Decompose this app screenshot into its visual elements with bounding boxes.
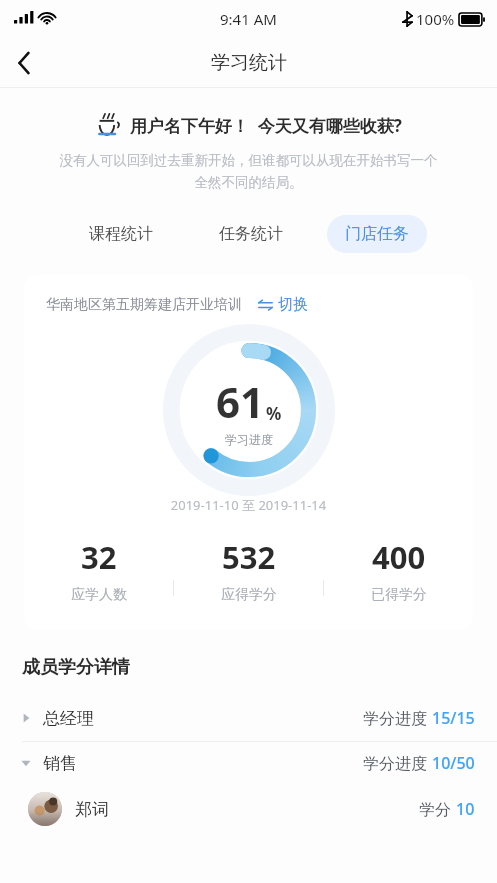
staticText: 没有人可以回到过去重新开始，但谁都可以从现在开始书写一个全然不同的结局。 xyxy=(58,152,439,191)
button[interactable]: Back xyxy=(0,39,48,87)
staticText: 10/50 xyxy=(432,752,475,774)
staticText: 华南地区第五期筹建店开业培训 xyxy=(46,296,242,314)
button[interactable]: 课程统计 xyxy=(71,215,171,253)
staticText: 成员学分详情 xyxy=(22,656,130,679)
staticText: 应学人数 xyxy=(71,586,127,604)
staticText: 61 xyxy=(216,373,265,430)
staticText: 总经理 xyxy=(43,708,94,729)
staticText: 用户名下午好！ 今天又有哪些收获? xyxy=(130,114,402,137)
staticText: 400 xyxy=(372,536,426,578)
staticText: 郑词 xyxy=(75,799,109,820)
button[interactable]: 总经理 xyxy=(0,697,497,741)
staticText: 任务统计 xyxy=(219,224,283,244)
staticText: 课程统计 xyxy=(89,224,153,244)
button[interactable]: 切换 xyxy=(256,291,310,318)
button[interactable]: 门店任务 xyxy=(327,215,427,253)
staticText: 切换 xyxy=(278,295,308,314)
staticText: 学习进度 xyxy=(225,432,273,447)
staticText: 学分进度 xyxy=(363,752,432,774)
staticText: 532 xyxy=(222,536,276,578)
staticText: 100% xyxy=(416,9,455,29)
staticText: 9:41 AM xyxy=(220,9,277,29)
staticText: 15/15 xyxy=(432,707,475,729)
staticText: 2019-11-10 至 2019-11-14 xyxy=(24,496,473,514)
staticText: 已得学分 xyxy=(371,586,427,604)
staticText: 销售 xyxy=(43,753,77,774)
staticText: 学分进度 xyxy=(363,707,432,729)
button[interactable]: 销售 xyxy=(0,742,497,786)
staticText: 门店任务 xyxy=(345,224,409,244)
staticText: 32 xyxy=(81,536,117,578)
staticText: 10 xyxy=(456,798,475,820)
staticText: 应得学分 xyxy=(221,586,277,604)
staticText: % xyxy=(266,402,282,425)
button[interactable]: 任务统计 xyxy=(201,215,301,253)
staticText: 学分 xyxy=(419,798,456,820)
button[interactable]: 郑词 xyxy=(0,786,497,836)
staticText: 学习统计 xyxy=(211,51,287,75)
